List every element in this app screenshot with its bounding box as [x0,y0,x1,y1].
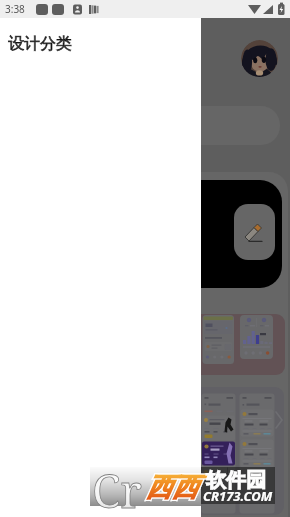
staticText: Cr [92,459,142,517]
staticText: 软件园 [206,468,266,493]
button[interactable]: Profile [241,40,278,77]
staticText: CR173.COM [203,487,273,505]
staticText: 西西 [146,471,198,504]
staticText: 西西 [146,471,198,504]
staticText: Cr [92,459,142,517]
staticText: 设计分类 [8,34,72,54]
staticText: 3:38 [5,2,25,16]
button[interactable]: 设计分类 [8,34,72,54]
